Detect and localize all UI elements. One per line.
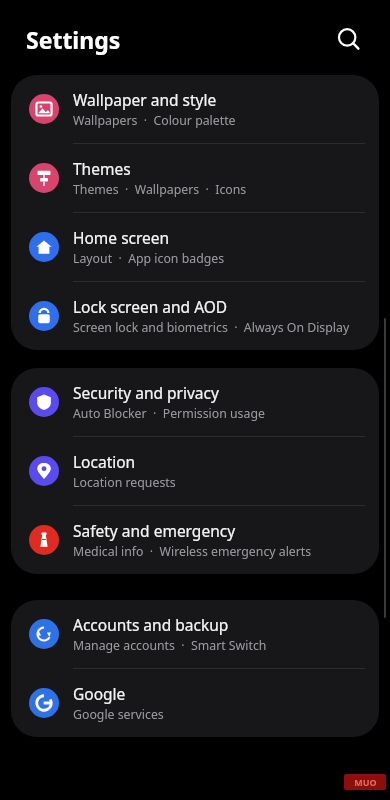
staticText: Themes · Wallpapers · Icons [73, 181, 247, 198]
staticText: Location requests [73, 474, 176, 491]
button[interactable]: Themes [11, 144, 379, 212]
staticText: Location [73, 451, 136, 472]
staticText: Manage accounts · Smart Switch [73, 637, 267, 654]
staticText: Layout · App icon badges [73, 250, 225, 267]
staticText: Accounts and backup [73, 614, 229, 635]
staticText: Wallpapers · Colour palette [73, 112, 236, 129]
staticText: Settings [26, 24, 121, 55]
button[interactable]: Accounts and backup [11, 600, 379, 668]
button[interactable]: Location [11, 437, 379, 505]
button[interactable]: Lock screen and AOD [11, 282, 379, 350]
staticText: Google [73, 683, 126, 704]
staticText: Home screen [73, 227, 170, 248]
button[interactable]: Wallpaper and style [11, 75, 379, 143]
staticText: Themes [73, 158, 131, 179]
staticText: Medical info · Wireless emergency alerts [73, 543, 312, 560]
button[interactable]: Home screen [11, 213, 379, 281]
staticText: Security and privacy [73, 382, 219, 403]
staticText: Safety and emergency [73, 520, 236, 541]
button[interactable]: Safety and emergency [11, 506, 379, 574]
staticText: Screen lock and biometrics · Always On D… [73, 319, 350, 336]
button[interactable]: Security and privacy [11, 368, 379, 436]
button[interactable]: Google [11, 669, 379, 737]
staticText: Auto Blocker · Permission usage [73, 405, 265, 422]
staticText: Lock screen and AOD [73, 296, 228, 317]
staticText: Wallpaper and style [73, 89, 217, 110]
staticText: Google services [73, 706, 164, 723]
button[interactable]: Search [327, 18, 371, 62]
staticText: MUO [354, 776, 377, 788]
